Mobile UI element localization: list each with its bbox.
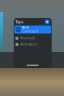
staticText: Tips: [15, 19, 23, 24]
staticText: Bluetooth: [20, 36, 35, 40]
staticText: Notifications: [20, 43, 37, 46]
button[interactable]: Bluetooth: [14, 36, 52, 40]
button[interactable]: Wi-Fi: [14, 25, 51, 33]
button[interactable]: Notifications: [14, 43, 52, 46]
staticText: Connected: [22, 30, 38, 33]
staticText: Wi-Fi: [22, 26, 29, 29]
button[interactable]: Add: [44, 19, 50, 25]
